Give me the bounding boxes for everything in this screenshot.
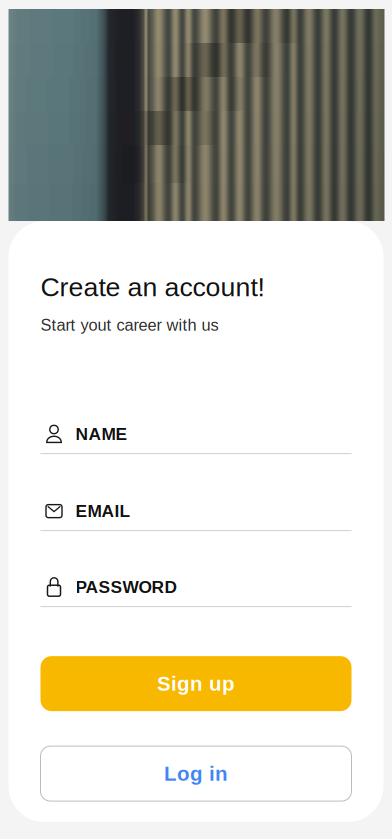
staticText: Sign up (157, 672, 235, 695)
button[interactable]: Log in (40, 746, 351, 801)
staticText: NAME (75, 424, 127, 444)
button[interactable]: Sign up (40, 656, 351, 711)
staticText: Log in (164, 762, 228, 785)
staticText: EMAIL (75, 501, 130, 521)
staticText: Start yout career with us (40, 316, 218, 334)
staticText: PASSWORD (75, 577, 177, 597)
staticText: Create an account! (40, 272, 264, 302)
